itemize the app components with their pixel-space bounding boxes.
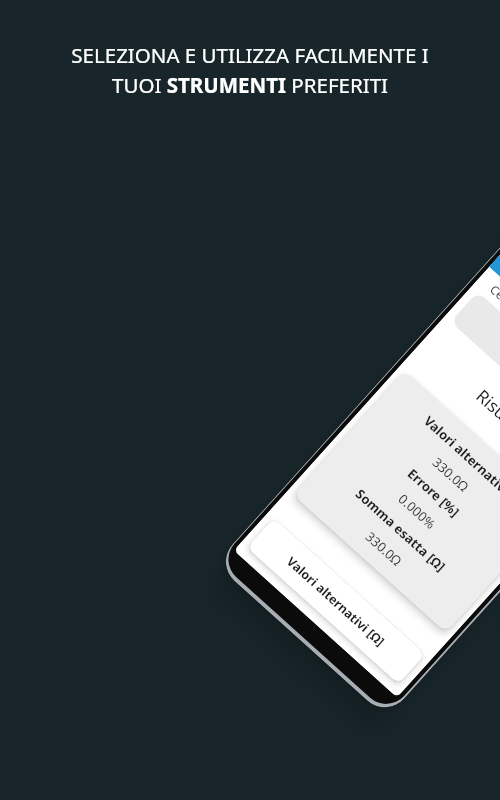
staticText: 0.000% [395, 490, 440, 533]
staticText: 330.0Ω [362, 528, 406, 570]
staticText: Valori alternativi [420, 412, 500, 499]
staticText: Risultati [471, 384, 500, 446]
button[interactable]: Cerca resistenza [472, 267, 500, 433]
staticText: TUOI STRUMENTI PREFERITI [112, 71, 388, 99]
staticText: Somma esatta [Ω] [352, 485, 449, 575]
staticText: Errore [%] [404, 464, 463, 521]
staticText: SELEZIONA E UTILIZZA FACILMENTE I [71, 41, 429, 69]
button[interactable]: Valori alternativi [Ω] [247, 518, 425, 684]
staticText: 330.0Ω [429, 453, 473, 495]
staticText: Valori alternativi [Ω] [283, 553, 388, 650]
staticText: Cerca resistenza [487, 281, 500, 355]
button[interactable] [450, 291, 500, 458]
